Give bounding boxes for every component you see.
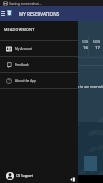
button[interactable]: CB Support (0, 169, 78, 183)
button[interactable]: My Account (0, 41, 78, 56)
staticText: CB Support (16, 174, 33, 178)
staticText: My Account (15, 47, 32, 51)
button[interactable]: Open navigation drawer (0, 6, 6, 21)
button[interactable]: About the App (0, 73, 78, 88)
staticText: About the App (15, 79, 36, 83)
staticText: MY RESERVATIONS (19, 11, 60, 17)
staticText: Saving screenshot... (9, 1, 42, 6)
staticText: 17 (95, 45, 100, 51)
staticText: MEADOWMONT (4, 27, 35, 32)
button[interactable]: Feedback (0, 57, 78, 72)
staticText: SUN (82, 40, 89, 44)
button[interactable]: Back (69, 176, 77, 182)
staticText: 16 (83, 45, 88, 51)
staticText: Choose a date to see reservations (58, 85, 103, 89)
staticText: Feedback (15, 63, 29, 67)
staticText: MON (93, 40, 101, 44)
